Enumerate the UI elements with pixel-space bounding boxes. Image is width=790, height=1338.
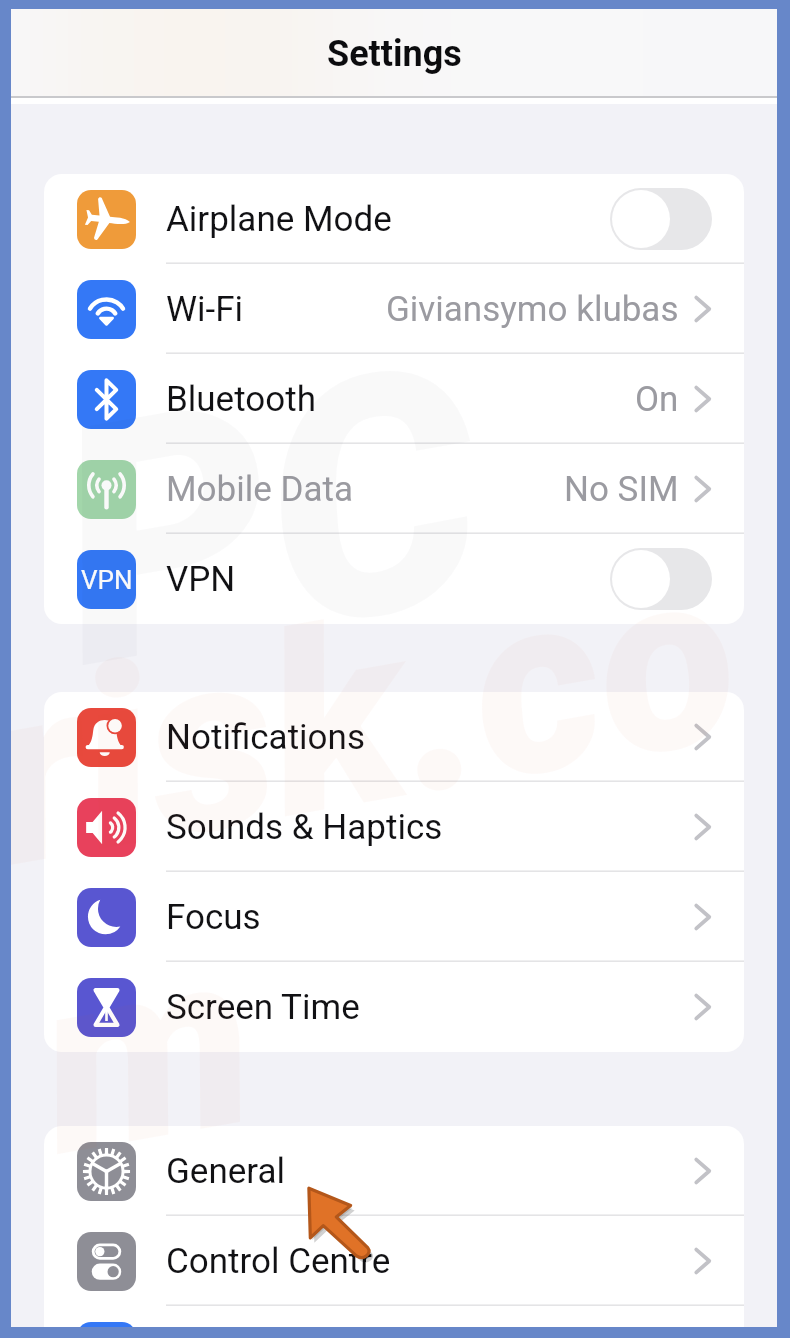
button[interactable]: Toggle: [610, 548, 712, 610]
staticText: Bluetooth: [166, 379, 316, 420]
button[interactable]: Bluetooth: [44, 354, 744, 444]
staticText: Giviansymo klubas: [386, 289, 679, 330]
staticText: risk.com: [11, 504, 777, 1214]
staticText: On: [635, 379, 679, 420]
other: Pointer: [306, 1186, 378, 1258]
button[interactable]: Notifications: [44, 692, 744, 782]
button[interactable]: Display & Brightness: [44, 1306, 744, 1327]
staticText: Airplane Mode: [166, 199, 392, 240]
staticText: PC: [29, 291, 509, 745]
staticText: VPN: [166, 559, 236, 600]
staticText: Sounds & Haptics: [166, 807, 443, 848]
button[interactable]: General: [44, 1126, 744, 1216]
staticText: General: [166, 1151, 286, 1192]
button[interactable]: Mobile Data: [44, 444, 744, 534]
staticText: Wi-Fi: [166, 289, 244, 330]
staticText: Focus: [166, 897, 261, 938]
button[interactable]: Toggle: [610, 188, 712, 250]
staticText: Notifications: [166, 717, 365, 758]
staticText: Screen Time: [166, 987, 360, 1028]
staticText: Mobile Data: [166, 469, 353, 510]
staticText: Settings: [327, 33, 462, 75]
staticText: Control Centre: [166, 1241, 391, 1282]
button[interactable]: Airplane Mode: [44, 174, 744, 264]
staticText: No SIM: [564, 469, 679, 510]
button[interactable]: VPN: [44, 534, 744, 624]
button[interactable]: Focus: [44, 872, 744, 962]
button[interactable]: Sounds & Haptics: [44, 782, 744, 872]
staticText: VPN: [81, 565, 133, 595]
button[interactable]: Wi-Fi: [44, 264, 744, 354]
button[interactable]: Screen Time: [44, 962, 744, 1052]
button[interactable]: Control Centre: [44, 1216, 744, 1306]
